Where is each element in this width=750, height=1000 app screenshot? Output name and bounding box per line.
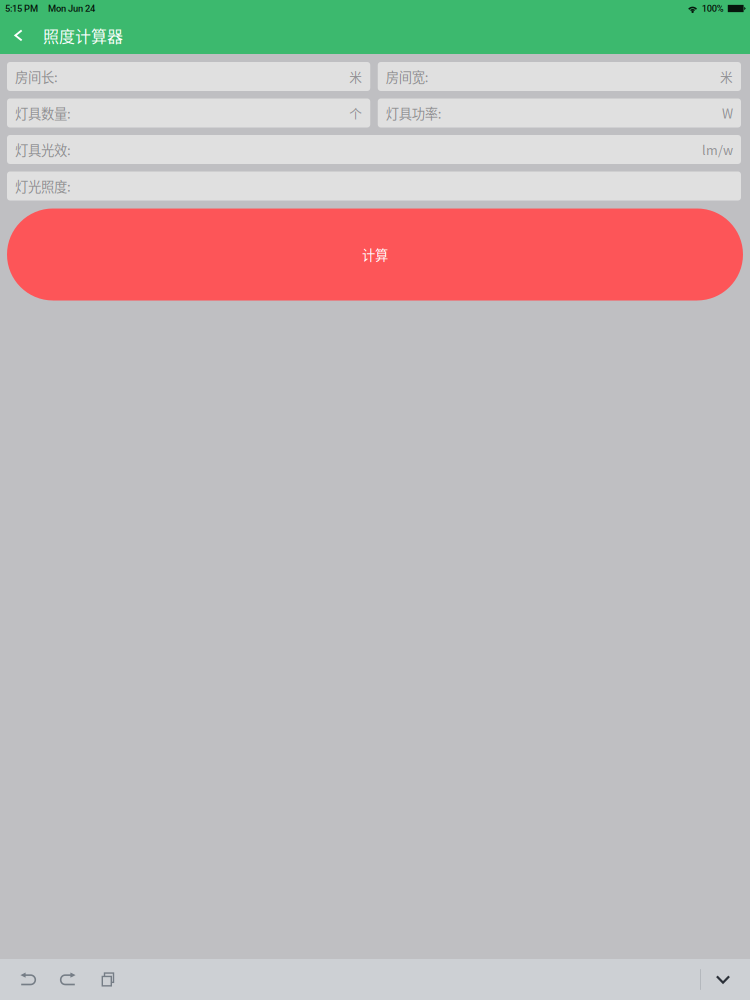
staticText: 灯光照度: [15, 176, 71, 196]
button[interactable]: 灯光照度: [7, 171, 741, 200]
staticText: 灯具数量: [15, 103, 71, 123]
button[interactable]: 灯具功率: [378, 98, 741, 127]
staticText: 计算 [362, 245, 388, 264]
button[interactable]: 房间宽: [378, 62, 741, 91]
staticText: 100% [702, 3, 724, 14]
button[interactable]: Paste [88, 959, 128, 1000]
staticText: 灯具功率: [386, 103, 442, 123]
staticText: 米 [720, 67, 733, 86]
button[interactable]: Back [0, 17, 37, 54]
staticText: 米 [349, 67, 362, 86]
staticText: 照度计算器 [43, 24, 123, 47]
button[interactable]: 计算 [7, 208, 743, 300]
staticText: 房间宽: [386, 67, 429, 86]
staticText: lm/w [702, 140, 733, 159]
staticText: 灯具光效: [15, 140, 71, 159]
button[interactable]: Redo [48, 959, 88, 1000]
staticText: W [722, 104, 733, 122]
button[interactable]: Hide keyboard [701, 959, 745, 1000]
staticText: 5:15 PM [5, 3, 38, 14]
staticText: 房间长: [15, 67, 58, 86]
button[interactable]: 灯具数量: [7, 98, 370, 127]
button[interactable]: 房间长: [7, 62, 370, 91]
button[interactable]: Undo [8, 959, 48, 1000]
button[interactable]: 灯具光效: [7, 135, 741, 164]
staticText: 个 [349, 104, 362, 122]
staticText: Mon Jun 24 [48, 3, 95, 14]
